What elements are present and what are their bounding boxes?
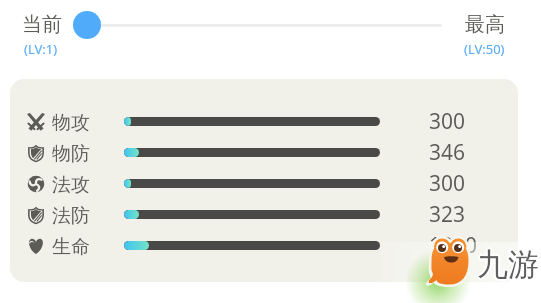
staticText: 300 <box>429 107 466 136</box>
button[interactable]: 法攻 <box>10 169 518 199</box>
staticText: (LV:1) <box>24 40 58 58</box>
button[interactable]: 当前 <box>22 12 62 55</box>
staticText: 九游 <box>477 245 539 284</box>
button[interactable]: 物防 <box>10 138 518 168</box>
button[interactable]: 法防 <box>10 200 518 230</box>
staticText: 九游 <box>476 244 538 283</box>
staticText: 1040 <box>429 231 478 260</box>
staticText: 九游 <box>476 246 538 285</box>
staticText: 法防 <box>52 204 90 228</box>
staticText: 九游 <box>478 246 540 285</box>
staticText: 物防 <box>52 142 90 166</box>
staticText: 最高 <box>465 12 505 37</box>
staticText: 九游 <box>475 245 537 284</box>
button[interactable]: 生命 <box>10 231 518 261</box>
staticText: 323 <box>429 200 466 229</box>
staticText: 九游 <box>478 244 540 283</box>
staticText: (LV:50) <box>464 40 505 58</box>
staticText: 当前 <box>22 12 62 37</box>
staticText: 九游 <box>479 245 541 284</box>
staticText: 法攻 <box>52 173 90 197</box>
staticText: 九游 <box>477 243 539 282</box>
staticText: 300 <box>429 169 466 198</box>
staticText: 物攻 <box>52 111 90 135</box>
button[interactable]: 物攻 <box>10 107 518 137</box>
staticText: 九游 <box>477 247 539 286</box>
button[interactable]: 最高 <box>464 12 505 55</box>
staticText: 346 <box>429 138 466 167</box>
button[interactable]: Level slider thumb <box>73 11 101 39</box>
staticText: 生命 <box>52 235 90 259</box>
